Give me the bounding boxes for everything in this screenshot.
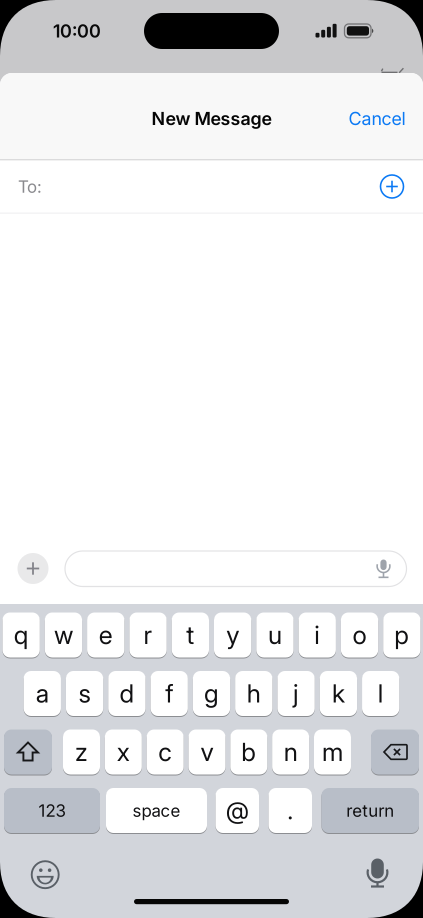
button[interactable]: c — [147, 729, 184, 774]
button[interactable]: 123 — [4, 788, 100, 833]
button[interactable]: Add Contact — [372, 166, 412, 206]
staticText: y — [226, 620, 239, 650]
button[interactable]: Delete — [371, 729, 419, 774]
button[interactable]: Cancel — [348, 108, 405, 129]
button[interactable]: q — [2, 612, 40, 657]
button[interactable]: return — [321, 788, 419, 833]
button[interactable]: b — [230, 729, 267, 774]
staticText: To: — [18, 176, 42, 197]
button[interactable]: Shift — [4, 729, 52, 774]
button[interactable]: space — [106, 788, 207, 833]
button[interactable]: r — [129, 612, 167, 657]
staticText: v — [200, 737, 213, 767]
button[interactable]: n — [272, 729, 309, 774]
button[interactable]: l — [362, 671, 399, 716]
staticText: space — [132, 800, 180, 821]
staticText: i — [314, 620, 320, 650]
button[interactable]: g — [193, 671, 230, 716]
button[interactable]: z — [63, 729, 100, 774]
staticText: e — [99, 620, 113, 650]
button[interactable]: Dictation — [355, 850, 399, 894]
staticText: b — [241, 737, 256, 767]
staticText: u — [268, 620, 282, 650]
button[interactable]: x — [105, 729, 142, 774]
button[interactable]: o — [341, 612, 378, 657]
button[interactable]: Emoji — [23, 853, 67, 897]
button[interactable]: e — [87, 612, 124, 657]
staticText: p — [394, 620, 409, 650]
button[interactable]: Apps — [17, 553, 48, 584]
staticText: g — [204, 679, 219, 708]
button[interactable]: d — [108, 671, 145, 716]
staticText: c — [158, 737, 172, 767]
button[interactable]: v — [188, 729, 225, 774]
staticText: w — [54, 620, 73, 650]
staticText: 10:00 — [53, 20, 101, 42]
staticText: o — [352, 620, 366, 650]
button[interactable]: k — [320, 671, 357, 716]
staticText: x — [117, 737, 130, 767]
staticText: q — [14, 620, 29, 650]
button[interactable]: Message field — [65, 551, 406, 586]
staticText: z — [75, 737, 88, 767]
staticText: j — [293, 679, 299, 708]
button[interactable]: t — [172, 612, 209, 657]
staticText: . — [287, 796, 293, 825]
button[interactable]: . — [268, 788, 312, 833]
button[interactable]: p — [383, 612, 420, 657]
staticText: a — [36, 679, 49, 708]
staticText: t — [186, 620, 194, 650]
button[interactable]: i — [299, 612, 336, 657]
button[interactable]: @ — [215, 788, 259, 833]
staticText: f — [165, 679, 173, 708]
staticText: @ — [226, 796, 249, 825]
staticText: 123 — [38, 800, 65, 821]
staticText: n — [284, 737, 298, 767]
button[interactable]: u — [256, 612, 294, 657]
button[interactable]: h — [235, 671, 272, 716]
staticText: k — [332, 679, 345, 708]
staticText: r — [143, 620, 152, 650]
staticText: s — [79, 679, 91, 708]
button[interactable]: m — [314, 729, 351, 774]
staticText: l — [378, 679, 384, 708]
staticText: Cancel — [348, 108, 405, 129]
staticText: return — [346, 800, 394, 821]
staticText: d — [119, 679, 134, 708]
staticText: h — [247, 679, 261, 708]
staticText: m — [322, 737, 343, 767]
button[interactable]: a — [24, 671, 61, 716]
button[interactable]: y — [214, 612, 251, 657]
button[interactable]: w — [45, 612, 82, 657]
button[interactable]: j — [277, 671, 315, 716]
button[interactable]: f — [150, 671, 188, 716]
button[interactable]: s — [66, 671, 103, 716]
staticText: New Message — [151, 108, 271, 129]
